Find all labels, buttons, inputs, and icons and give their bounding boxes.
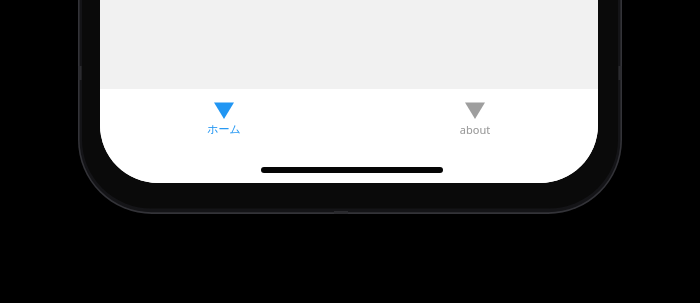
staticText: about — [413, 122, 537, 137]
button[interactable]: About — [413, 89, 537, 159]
button[interactable]: Home — [162, 89, 286, 159]
staticText: ホーム — [162, 122, 286, 136]
